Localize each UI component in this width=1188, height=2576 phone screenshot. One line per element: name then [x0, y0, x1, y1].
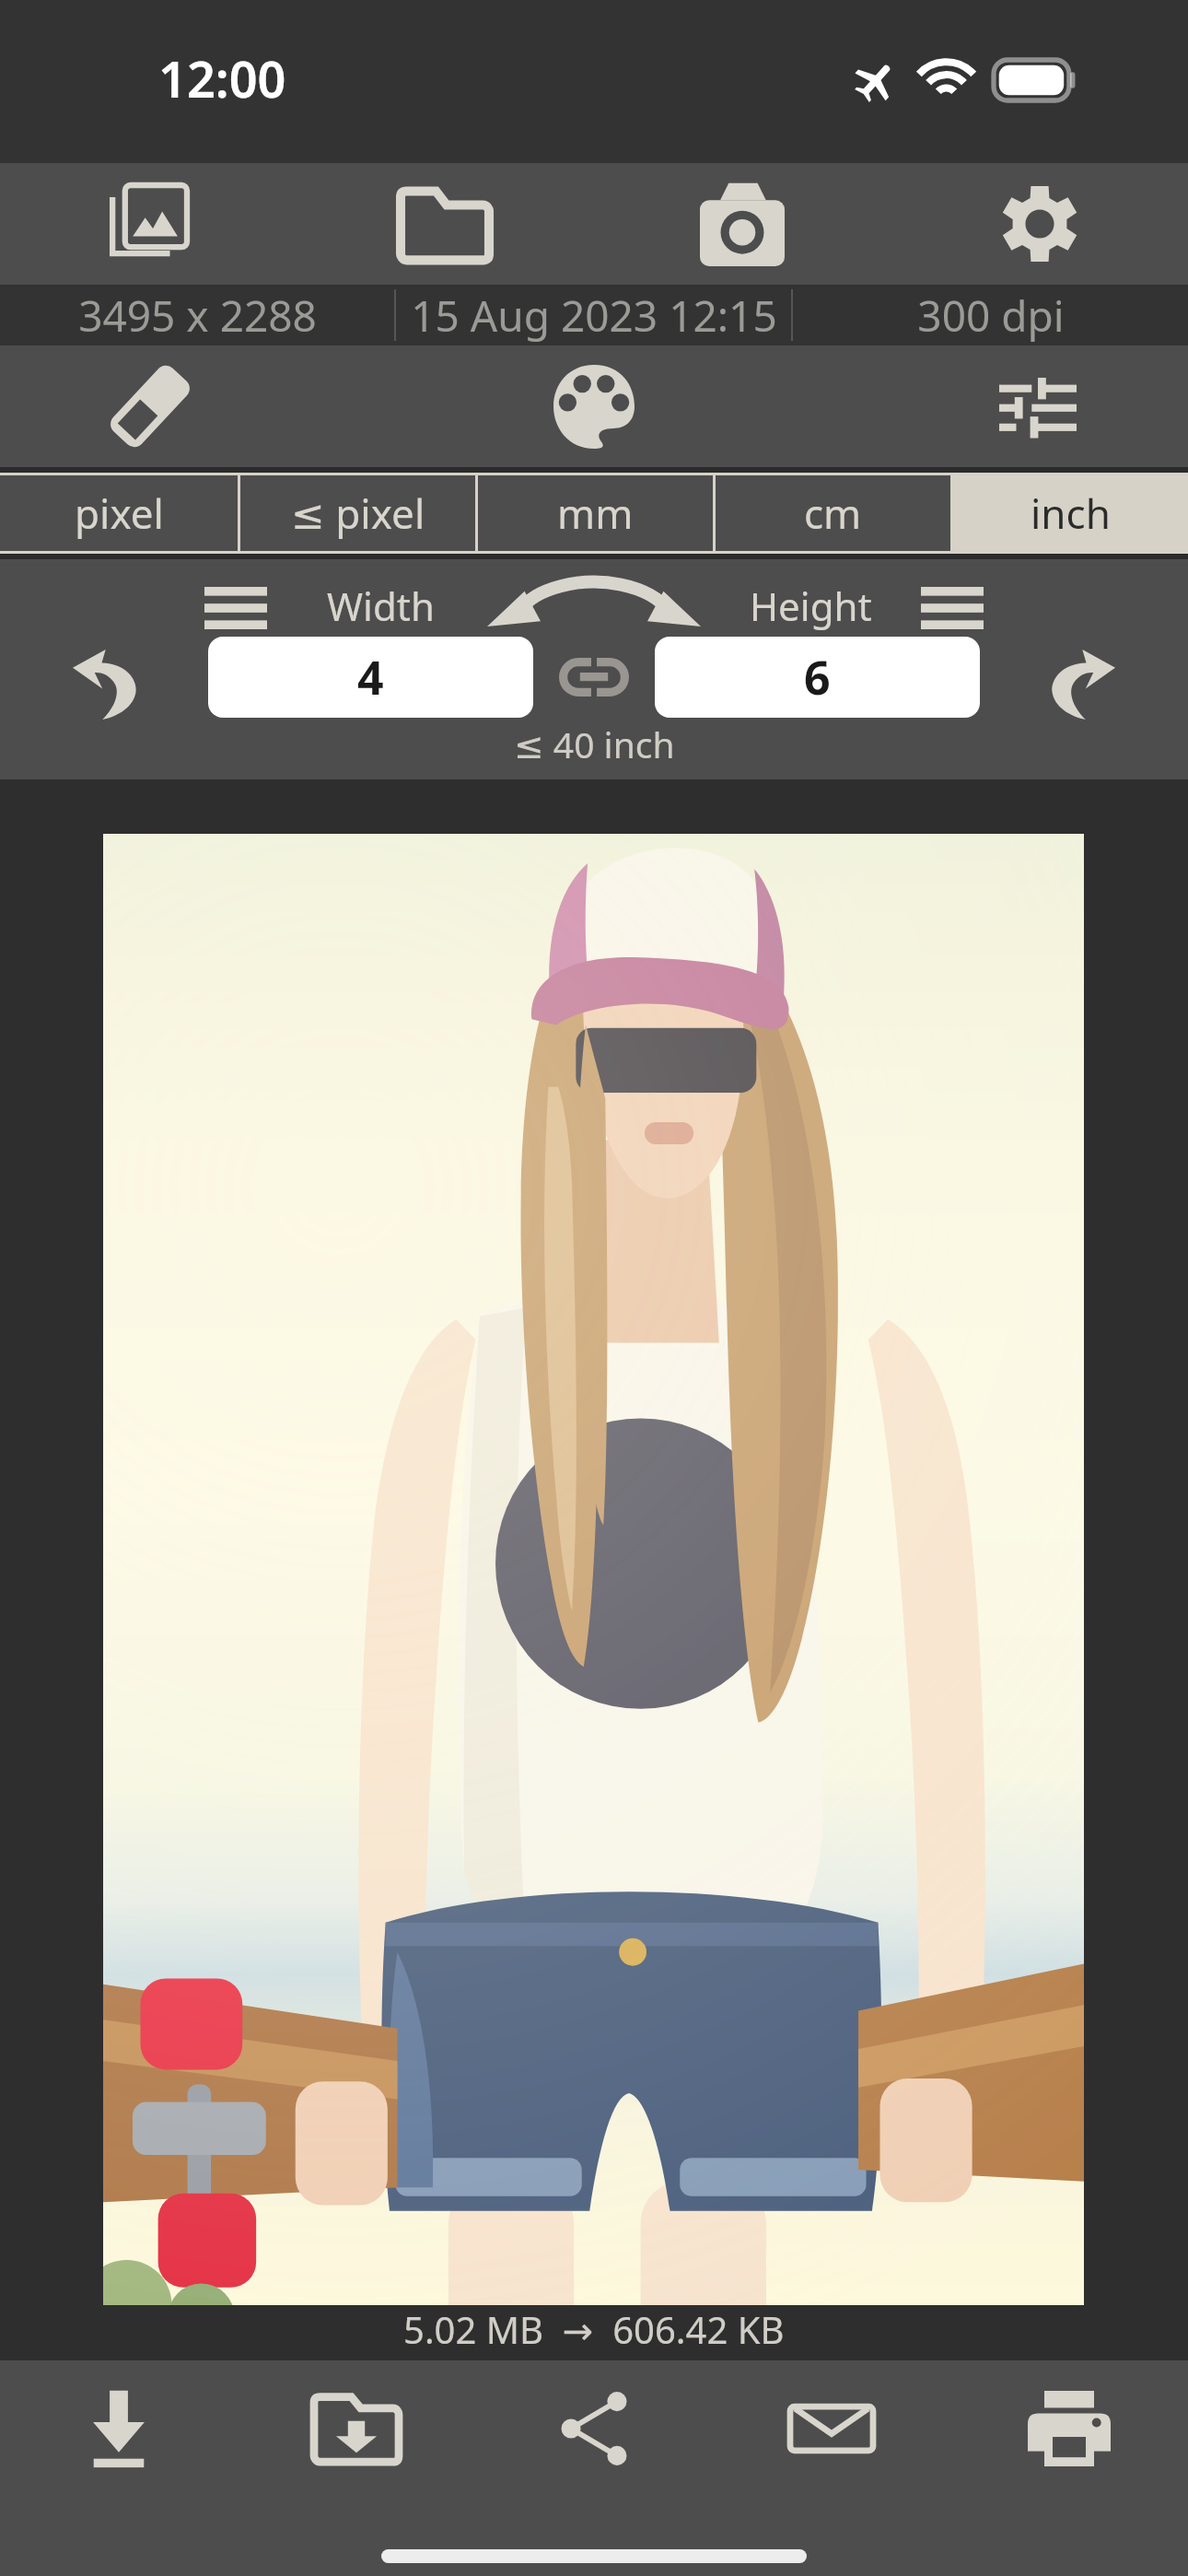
button[interactable]: Open folder — [297, 163, 593, 285]
staticText: ≤ pixel — [291, 486, 425, 541]
button[interactable]: cm — [716, 475, 950, 551]
staticText: 3495 x 2288 — [78, 287, 317, 345]
button[interactable]: 6 — [655, 637, 980, 718]
button[interactable]: Camera — [593, 163, 891, 285]
staticText: mm — [557, 486, 634, 541]
button[interactable]: Eraser — [75, 345, 226, 467]
button[interactable]: Colour palette — [518, 345, 670, 467]
button[interactable]: Save to folder — [238, 2360, 475, 2497]
staticText: 15 Aug 2023 12:15 — [411, 287, 777, 345]
staticText: Width — [327, 580, 435, 632]
staticText: ≤ 40 inch — [514, 720, 675, 768]
button[interactable]: inch — [953, 475, 1188, 551]
staticText: 12:00 — [158, 44, 286, 112]
staticText: 5.02 MB → 606.42 KB — [403, 2304, 785, 2354]
staticText: Height — [750, 580, 872, 632]
staticText: 6 — [804, 646, 831, 708]
button[interactable]: Share — [475, 2360, 713, 2497]
button[interactable]: Save — [0, 2360, 238, 2497]
button[interactable]: pixel — [0, 475, 238, 551]
staticText: inch — [1031, 486, 1111, 541]
staticText: pixel — [75, 486, 164, 541]
button[interactable]: mm — [478, 475, 713, 551]
button[interactable]: Adjust — [962, 345, 1113, 467]
button[interactable]: Photo library — [0, 163, 297, 285]
staticText: cm — [804, 486, 862, 541]
button[interactable]: Print — [950, 2360, 1188, 2497]
button[interactable]: ≤ pixel — [240, 475, 475, 551]
button[interactable]: Settings — [891, 163, 1188, 285]
button[interactable]: 4 — [208, 637, 533, 718]
button[interactable]: Undo — [50, 629, 160, 740]
staticText: 4 — [357, 646, 384, 708]
staticText: 300 dpi — [917, 287, 1065, 345]
button[interactable]: Email — [713, 2360, 950, 2497]
button[interactable]: Redo — [1028, 629, 1138, 740]
